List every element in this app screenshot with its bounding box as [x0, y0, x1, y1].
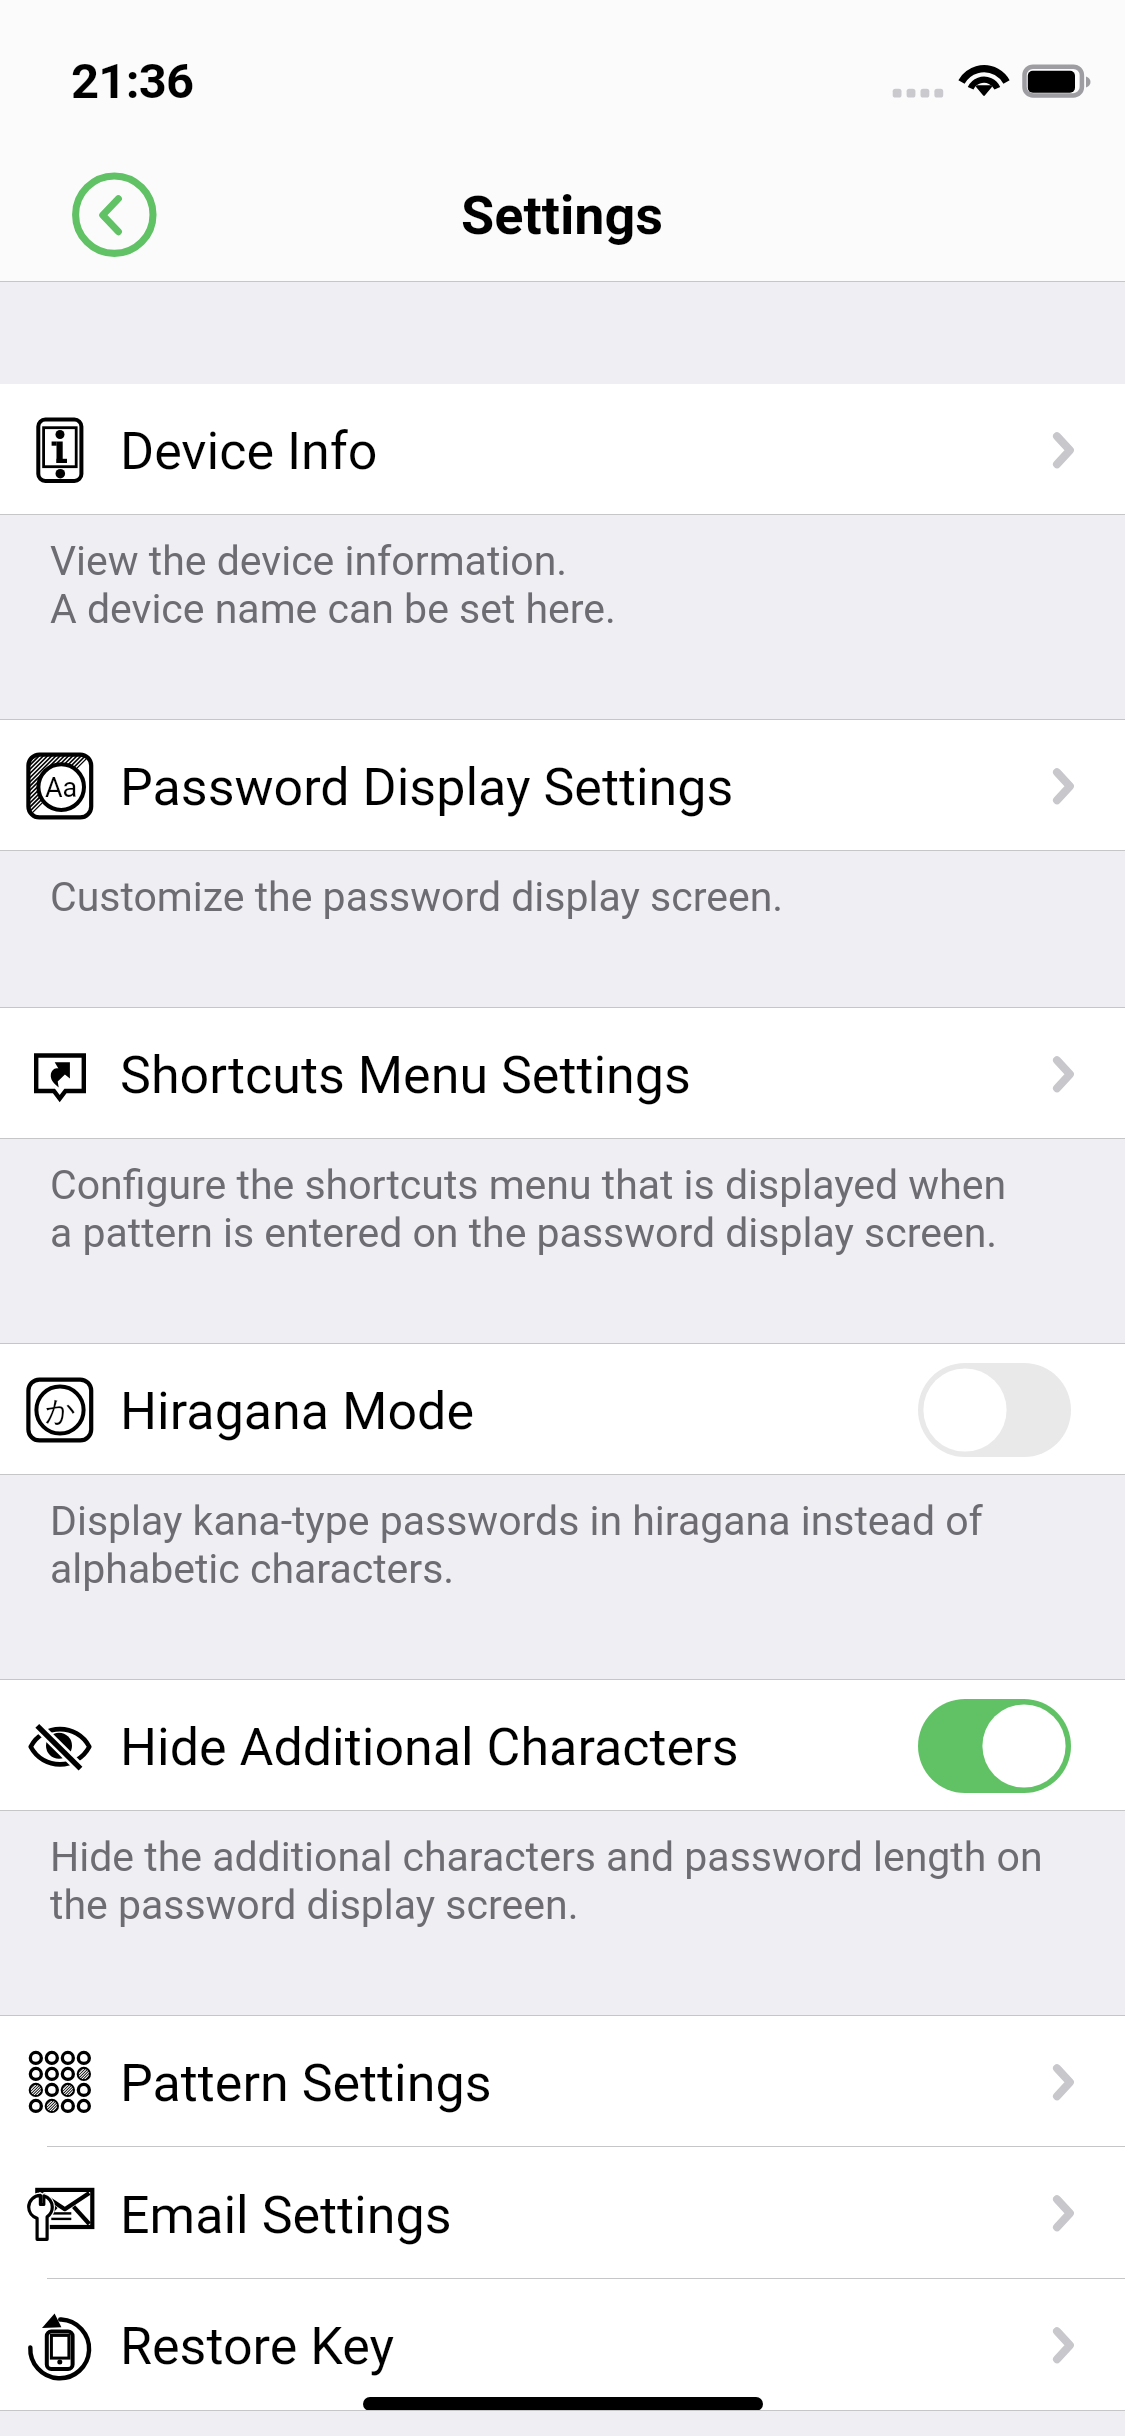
button[interactable]: Restore Key	[0, 2279, 1125, 2410]
staticText: a pattern is entered on the password dis…	[50, 1209, 998, 1257]
staticText: A device name can be set here.	[50, 585, 616, 633]
staticText: Settings	[461, 184, 664, 247]
staticText: Pattern Settings	[120, 2053, 492, 2114]
staticText: Aa	[45, 772, 78, 804]
staticText: alphabetic characters.	[50, 1545, 455, 1593]
staticText: Device Info	[120, 421, 378, 482]
button[interactable]: Shortcuts Menu Settings	[0, 1008, 1125, 1139]
staticText: Shortcuts Menu Settings	[120, 1045, 691, 1106]
button[interactable]: Pattern Settings	[0, 2016, 1125, 2147]
staticText: the password display screen.	[50, 1881, 579, 1929]
button[interactable]: Hide Additional Characters	[0, 1680, 1125, 1811]
button[interactable]: Aa	[0, 720, 1125, 851]
button[interactable]: Email Settings	[0, 2147, 1125, 2279]
staticText: Email Settings	[120, 2185, 452, 2246]
staticText: View the device information.	[50, 537, 568, 585]
button[interactable]: Back	[66, 167, 162, 263]
staticText: Display kana-type passwords in hiragana …	[50, 1497, 983, 1545]
staticText: Configure the shortcuts menu that is dis…	[50, 1161, 1007, 1209]
staticText: Hide the additional characters and passw…	[50, 1833, 1043, 1881]
staticText: Customize the password display screen.	[50, 873, 784, 921]
staticText: 21:36	[71, 53, 194, 110]
staticText: Password Display Settings	[120, 757, 734, 818]
staticText: Hiragana Mode	[120, 1381, 474, 1442]
staticText: か	[45, 1392, 76, 1430]
staticText: Restore Key	[120, 2316, 395, 2377]
button[interactable]: か	[0, 1344, 1125, 1475]
staticText: Hide Additional Characters	[120, 1717, 739, 1778]
button[interactable]: Device Info	[0, 384, 1125, 515]
